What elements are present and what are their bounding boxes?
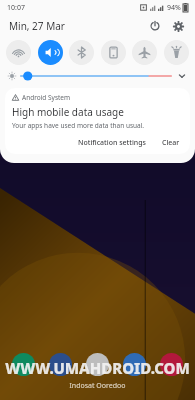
button[interactable]: Camera (86, 353, 109, 376)
button[interactable]: Bluetooth (69, 40, 94, 65)
button[interactable]: Clear (158, 135, 184, 151)
button[interactable]: Apps (160, 353, 183, 376)
button[interactable]: Auto rotate (101, 40, 126, 65)
staticText: Indosat Ooredoo (69, 381, 126, 391)
staticText: WWW.UMAHDROID.COM (5, 358, 190, 378)
button[interactable]: Brightness (21, 68, 171, 84)
staticText: Min, 27 Mar (9, 19, 65, 33)
staticText: Your apps have used more data than usual… (12, 121, 145, 130)
button[interactable]: Internet (123, 353, 146, 376)
staticText: 10:07 (7, 3, 25, 13)
button[interactable]: Expand brightness options (176, 70, 188, 82)
button[interactable]: Wi-Fi (6, 40, 31, 65)
button[interactable]: Sound (38, 40, 63, 65)
button[interactable]: Phone (12, 353, 35, 376)
button[interactable]: Power off (147, 18, 163, 34)
staticText: Notification settings (78, 138, 146, 148)
button[interactable]: Android System (5, 88, 190, 154)
staticText: High mobile data usage (12, 105, 124, 119)
staticText: 94% (167, 3, 181, 13)
staticText: Android System (22, 93, 71, 102)
button[interactable]: Settings (170, 18, 186, 34)
button[interactable]: Messages (49, 353, 72, 376)
button[interactable]: Airplane mode (132, 40, 157, 65)
staticText: Clear (162, 138, 180, 148)
button[interactable]: Flashlight (164, 40, 189, 65)
button[interactable]: Notification settings (74, 135, 150, 151)
